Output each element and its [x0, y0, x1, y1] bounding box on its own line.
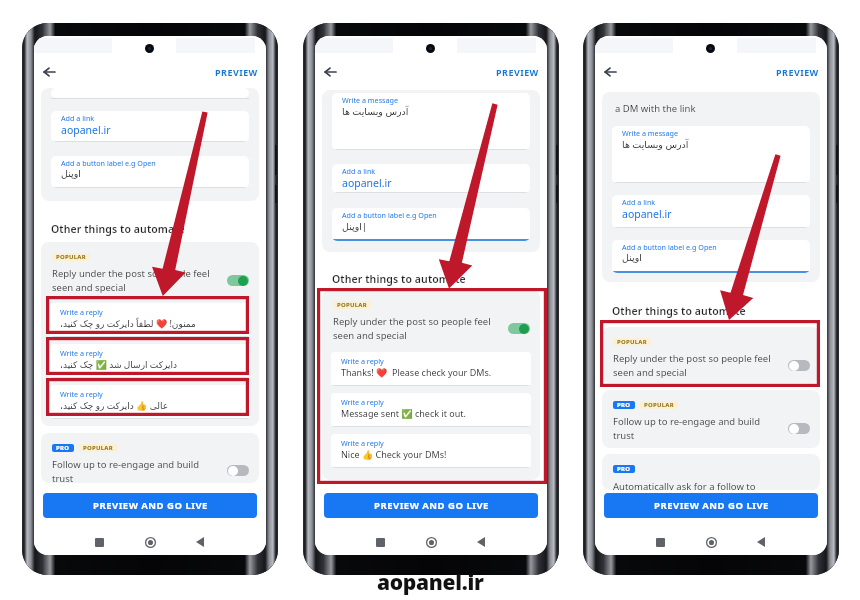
- staticText: POPULAR: [617, 338, 647, 346]
- button[interactable]: PREVIEW AND GO LIVE: [43, 493, 257, 518]
- staticText: aopanel.ir: [342, 176, 392, 190]
- staticText: Add a button label e.g Open: [622, 242, 717, 252]
- staticText: PREVIEW: [215, 66, 258, 78]
- staticText: Write a reply: [60, 389, 103, 399]
- button[interactable]: Turn on: [227, 465, 249, 476]
- staticText: PRO: [617, 465, 631, 473]
- staticText: Thanks! ❤ Please check your DMs.: [341, 366, 492, 378]
- staticText: ،ممنون! ❤ لطفاً دایرکت رو چک کنید: [60, 317, 196, 329]
- button[interactable]: Turn on: [788, 360, 810, 371]
- staticText: PREVIEW: [496, 66, 539, 78]
- staticText: Write a message: [342, 95, 399, 105]
- button[interactable]: Write a message: [332, 93, 530, 150]
- button[interactable]: PREVIEW: [209, 61, 262, 83]
- button[interactable]: Back: [470, 531, 492, 553]
- staticText: Reply under the post so people feel seen…: [333, 315, 500, 342]
- staticText: اوپنل: [622, 252, 642, 263]
- staticText: Write a reply: [341, 356, 384, 366]
- staticText: Add a link: [61, 113, 95, 123]
- staticText: Write a reply: [341, 397, 384, 407]
- button[interactable]: Home: [700, 531, 722, 553]
- button[interactable]: Recent apps: [649, 531, 671, 553]
- button[interactable]: Home: [420, 531, 442, 553]
- button[interactable]: PREVIEW: [490, 61, 543, 83]
- button[interactable]: Add a button label e.g Open: [332, 208, 530, 241]
- button[interactable]: Write a reply: [50, 303, 250, 337]
- staticText: POPULAR: [644, 401, 674, 409]
- staticText: Other things to automate: [51, 222, 185, 236]
- staticText: Follow up to re-engage and build trust: [52, 458, 219, 483]
- staticText: Other things to automate: [332, 272, 466, 286]
- button[interactable]: Write a reply: [331, 352, 531, 386]
- staticText: Add a button label e.g Open: [61, 158, 156, 168]
- staticText: a DM with the link: [615, 102, 696, 115]
- staticText: aopanel.ir: [622, 207, 672, 221]
- staticText: PREVIEW AND GO LIVE: [374, 499, 489, 512]
- button[interactable]: Back: [750, 531, 772, 553]
- staticText: PREVIEW AND GO LIVE: [654, 499, 769, 512]
- staticText: Write a reply: [60, 348, 103, 358]
- staticText: Other things to automate: [612, 304, 746, 318]
- staticText: Reply under the post so people feel seen…: [613, 352, 780, 379]
- staticText: POPULAR: [56, 253, 86, 261]
- staticText: Add a link: [622, 197, 656, 207]
- button[interactable]: Turn off: [227, 275, 249, 286]
- staticText: PREVIEW: [776, 66, 819, 78]
- button[interactable]: Write a reply: [50, 385, 250, 419]
- staticText: PRO: [617, 401, 631, 409]
- staticText: Add a link: [342, 166, 376, 176]
- button[interactable]: Add a link: [612, 195, 810, 228]
- staticText: آدرس وبسایت ها: [622, 138, 689, 151]
- staticText: Message sent ✅ check it out.: [341, 407, 466, 419]
- button[interactable]: Write a reply: [50, 344, 250, 378]
- staticText: ،دایرکت ارسال شد ✅ چک کنید: [60, 358, 177, 370]
- staticText: aopanel.ir: [377, 568, 484, 597]
- button[interactable]: PREVIEW: [770, 61, 823, 83]
- staticText: PRO: [56, 444, 70, 452]
- staticText: Reply under the post so people feel seen…: [52, 267, 219, 294]
- staticText: aopanel.ir: [61, 123, 111, 137]
- staticText: اوپنل|: [342, 220, 368, 233]
- button[interactable]: Add a link: [332, 164, 530, 193]
- staticText: Follow up to re-engage and build trust: [613, 415, 780, 442]
- staticText: Add a button label e.g Open: [342, 210, 437, 220]
- button[interactable]: Add a link: [51, 111, 249, 142]
- staticText: Write a reply: [60, 307, 103, 317]
- button[interactable]: Write a reply: [331, 434, 531, 468]
- button[interactable]: Back: [599, 61, 621, 83]
- button[interactable]: Add a button label e.g Open: [51, 156, 249, 188]
- button[interactable]: Home: [139, 531, 161, 553]
- staticText: آدرس وبسایت ها: [342, 105, 409, 118]
- staticText: POPULAR: [337, 301, 367, 309]
- button[interactable]: Write a reply: [331, 393, 531, 427]
- button[interactable]: Back: [38, 61, 60, 83]
- staticText: Write a reply: [341, 438, 384, 448]
- button[interactable]: Recent apps: [369, 531, 391, 553]
- staticText: Write a message: [622, 128, 679, 138]
- button[interactable]: Turn on: [788, 423, 810, 434]
- button[interactable]: Back: [189, 531, 211, 553]
- button[interactable]: PREVIEW AND GO LIVE: [604, 493, 818, 518]
- button[interactable]: PREVIEW AND GO LIVE: [324, 493, 538, 518]
- staticText: ،عالی 👍 دایرکت رو چک کنید: [60, 399, 169, 411]
- staticText: PREVIEW AND GO LIVE: [93, 499, 208, 512]
- button[interactable]: Back: [319, 61, 341, 83]
- button[interactable]: Turn off: [508, 323, 530, 334]
- staticText: Automatically ask for a follow to: [613, 480, 756, 490]
- staticText: Nice 👍 Check your DMs!: [341, 448, 447, 460]
- button[interactable]: Recent apps: [88, 531, 110, 553]
- staticText: اوپنل: [61, 168, 81, 179]
- button[interactable]: Add a button label e.g Open: [612, 240, 810, 273]
- button[interactable]: Write a message: [612, 126, 810, 183]
- staticText: POPULAR: [83, 444, 113, 452]
